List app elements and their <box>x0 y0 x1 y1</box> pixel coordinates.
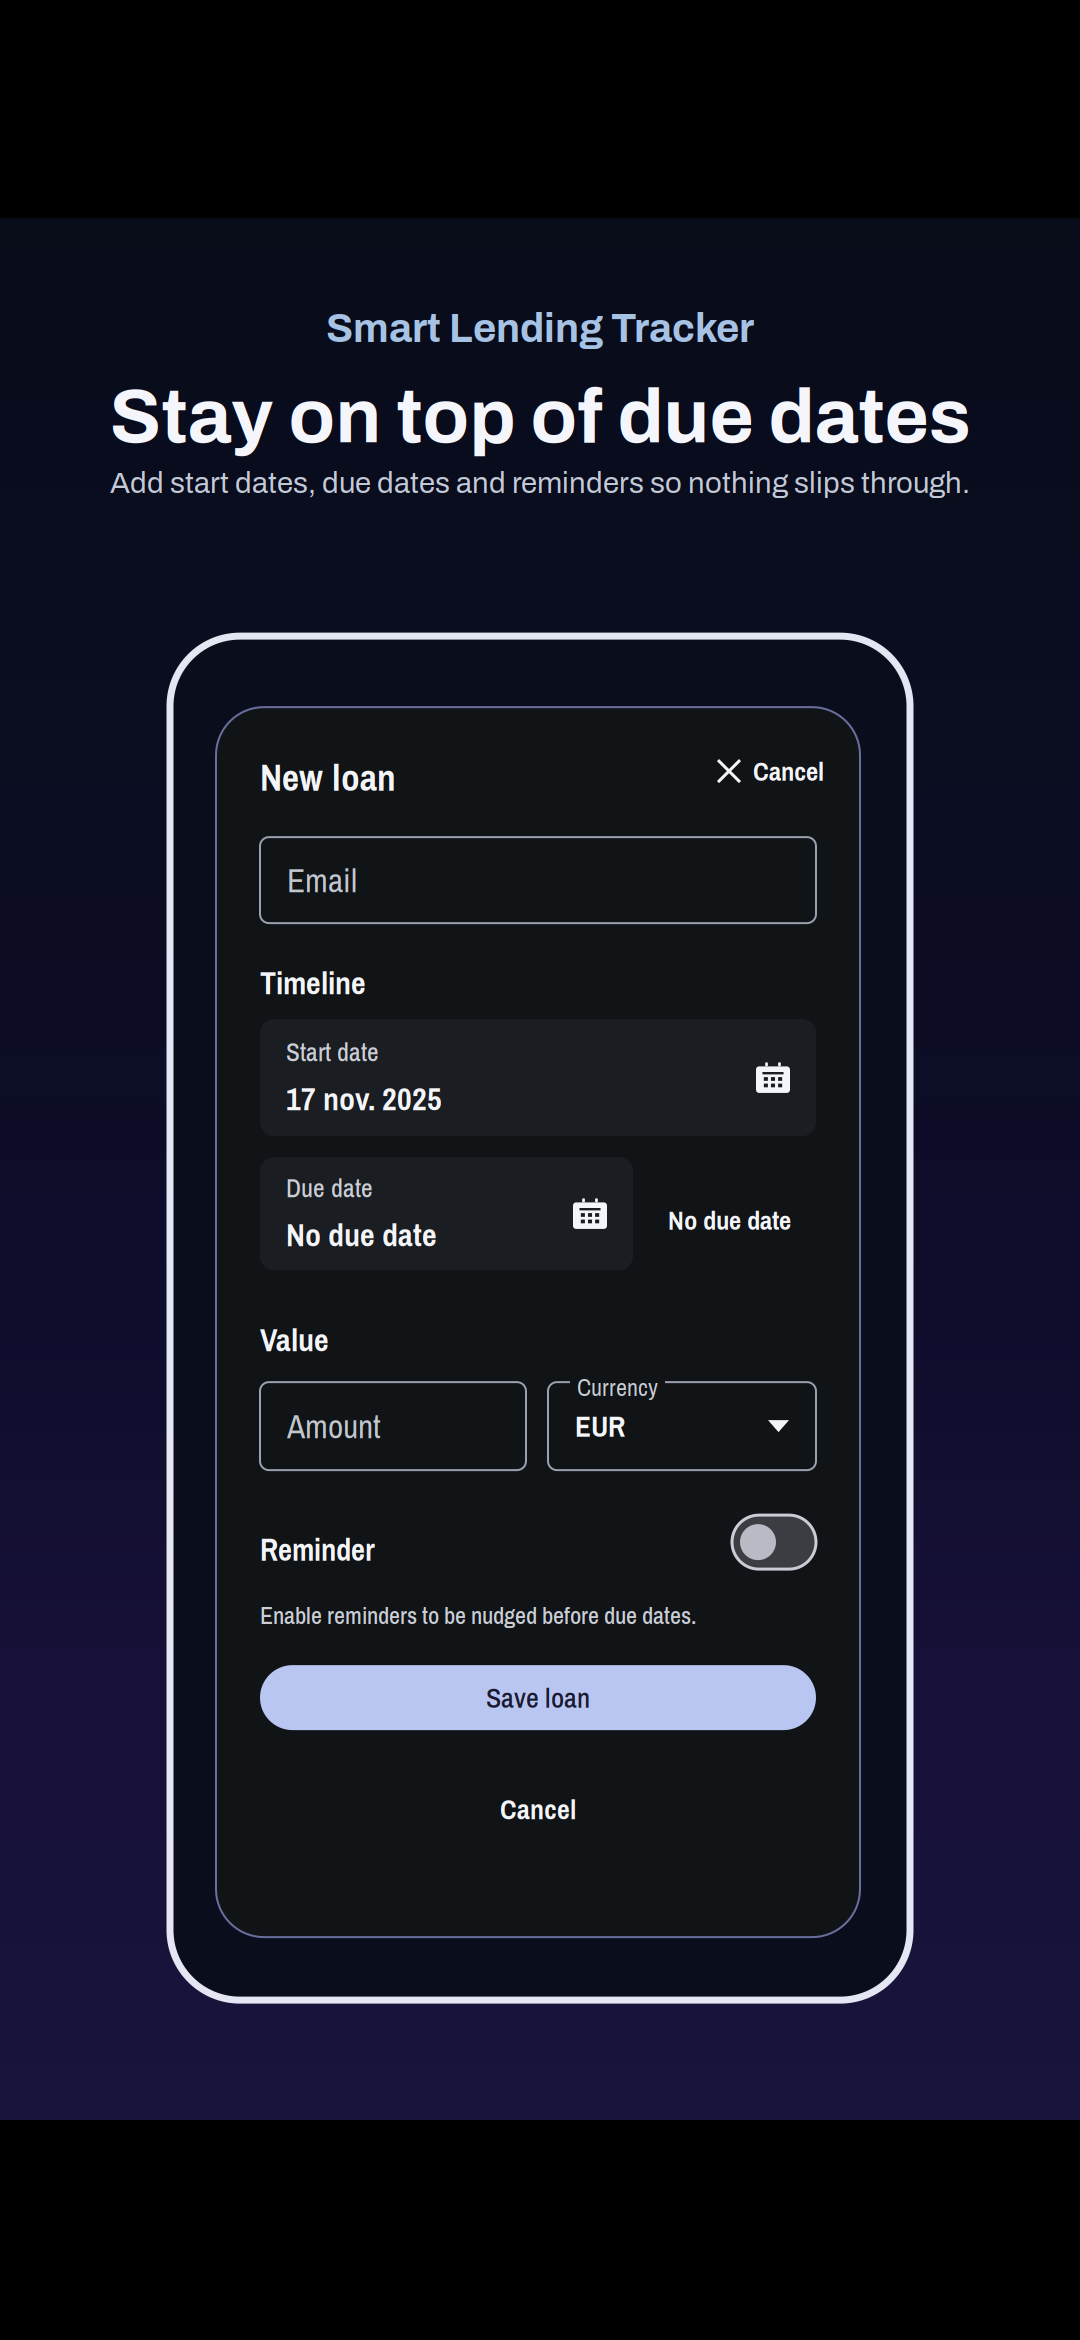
staticText: No due date <box>286 1213 437 1256</box>
staticText: Smart Lending Tracker <box>326 307 754 350</box>
staticText: No due date <box>668 1202 791 1238</box>
staticText: 17 nov. 2025 <box>286 1077 442 1120</box>
button[interactable]: EUR <box>548 1382 816 1470</box>
button[interactable]: New loan <box>260 752 396 802</box>
staticText: Value <box>260 1318 329 1361</box>
button[interactable]: Due date <box>260 1157 633 1270</box>
staticText: New loan <box>260 752 396 802</box>
button[interactable]: Start date <box>260 1019 816 1136</box>
staticText: Save loan <box>486 1679 590 1716</box>
button[interactable]: Reminder toggle <box>732 1515 816 1569</box>
button[interactable]: Save loan <box>260 1665 816 1730</box>
staticText: Email <box>287 858 357 903</box>
staticText: Cancel <box>500 1790 576 1828</box>
button[interactable]: Amount <box>260 1382 526 1470</box>
staticText: EUR <box>575 1406 625 1446</box>
staticText: Reminder <box>260 1529 375 1570</box>
button[interactable]: No due date <box>668 1202 791 1238</box>
staticText: Currency <box>577 1371 658 1403</box>
button[interactable]: Cancel <box>260 1793 816 1825</box>
staticText: Add start dates, due dates and reminders… <box>110 467 970 499</box>
staticText: Timeline <box>260 961 366 1004</box>
staticText: Amount <box>287 1404 381 1449</box>
staticText: Start date <box>286 1035 379 1069</box>
staticText: Stay on top of due dates <box>109 375 970 458</box>
staticText: Due date <box>286 1171 373 1205</box>
button[interactable]: Cancel <box>716 753 824 789</box>
staticText: Enable reminders to be nudged before due… <box>260 1599 696 1631</box>
button[interactable]: Email <box>260 837 816 923</box>
staticText: Cancel <box>753 753 824 789</box>
